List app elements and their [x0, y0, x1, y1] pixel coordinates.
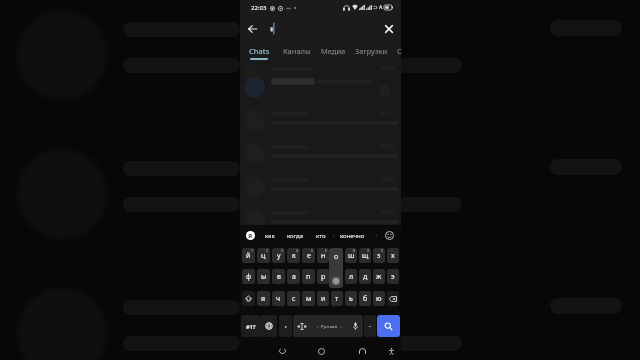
button[interactable]: когда	[282, 225, 308, 246]
staticText: у	[277, 251, 281, 261]
button[interactable]: Search	[377, 315, 400, 337]
button[interactable]: Загрузки	[354, 42, 388, 62]
button[interactable]: д	[359, 269, 371, 284]
button[interactable]: п	[302, 269, 315, 284]
staticText: л	[349, 272, 354, 282]
staticText: о	[334, 252, 339, 262]
button[interactable]: ц	[257, 248, 270, 263]
staticText: 6	[325, 248, 328, 253]
button[interactable]: а	[287, 269, 300, 284]
button[interactable]: Backspace	[387, 291, 399, 306]
staticText: 1	[251, 248, 254, 253]
button[interactable]: м	[302, 291, 315, 306]
button[interactable]: ю	[373, 291, 385, 306]
button[interactable]: .	[364, 315, 376, 337]
button[interactable]: у	[272, 248, 285, 263]
staticText: ш	[348, 251, 355, 261]
button[interactable]: Медиа	[319, 42, 347, 62]
button[interactable]: Chats	[245, 42, 273, 62]
button[interactable]: Home	[314, 344, 328, 358]
button[interactable]: Voice input	[353, 322, 358, 330]
button[interactable]: ,	[279, 315, 292, 337]
staticText: ц	[261, 251, 266, 261]
staticText: п	[306, 272, 311, 282]
button[interactable]: Yandex keyboard	[246, 231, 255, 240]
staticText: ч	[276, 294, 281, 304]
staticText: как	[265, 232, 275, 240]
button[interactable]: кто	[308, 225, 334, 246]
staticText: #1?	[246, 323, 256, 330]
staticText: в	[277, 272, 281, 282]
staticText: г	[335, 251, 339, 261]
button[interactable]: э	[387, 269, 399, 284]
button[interactable]: ь	[345, 291, 357, 306]
button[interactable]: к	[287, 248, 300, 263]
staticText: щ	[362, 251, 369, 261]
button[interactable]: ‹	[293, 315, 363, 337]
staticText: ж	[376, 272, 382, 282]
button[interactable]: т	[331, 291, 343, 306]
button[interactable]: как	[257, 225, 283, 246]
button[interactable]: р	[317, 269, 329, 284]
button[interactable]: н	[317, 248, 329, 263]
button[interactable]: С	[394, 42, 404, 62]
staticText: 22:03	[251, 4, 267, 12]
staticText: 4	[296, 248, 299, 253]
button[interactable]: ы	[257, 269, 270, 284]
staticText: .	[369, 320, 371, 330]
staticText: Загрузки	[355, 46, 388, 56]
staticText: э	[391, 272, 395, 282]
button[interactable]: Clear search	[379, 19, 398, 38]
staticText: е	[307, 251, 311, 261]
button[interactable]: ф	[242, 269, 255, 284]
staticText: и	[321, 294, 326, 304]
button[interactable]: с	[287, 291, 300, 306]
staticText: ю	[376, 294, 382, 304]
button[interactable]: е	[302, 248, 315, 263]
staticText: ‹	[317, 323, 319, 330]
staticText: Медиа	[321, 46, 346, 56]
button[interactable]: я	[257, 291, 270, 306]
button[interactable]: г	[331, 248, 343, 263]
button[interactable]: Shift	[242, 291, 255, 306]
button[interactable]: о	[331, 269, 343, 284]
button[interactable]: б	[359, 291, 371, 306]
button[interactable]: ш	[345, 248, 357, 263]
staticText: н	[321, 251, 326, 261]
button[interactable]: Back	[275, 344, 289, 358]
button[interactable]: ж	[373, 269, 385, 284]
button[interactable]: #1?	[241, 315, 260, 337]
staticText: ф	[246, 272, 252, 282]
button[interactable]	[240, 204, 401, 236]
button[interactable]: л	[345, 269, 357, 284]
button[interactable]: в	[272, 269, 285, 284]
staticText: С	[397, 46, 402, 56]
staticText: з	[377, 251, 381, 261]
staticText: й	[246, 251, 251, 261]
staticText: Chats	[249, 46, 270, 56]
staticText: конечно	[340, 232, 365, 240]
staticText: т	[335, 294, 339, 304]
button[interactable]: й	[242, 248, 255, 263]
button[interactable]	[240, 72, 401, 104]
button[interactable]: Back	[243, 19, 262, 38]
button[interactable]: Accessibility	[384, 344, 398, 358]
button[interactable]: Switch language	[260, 315, 277, 337]
staticText: 3	[281, 248, 284, 253]
staticText: 5	[311, 248, 314, 253]
button[interactable]: ч	[272, 291, 285, 306]
button[interactable]: х	[387, 248, 399, 263]
staticText: 9	[367, 248, 370, 253]
button[interactable]: Emoji	[385, 231, 394, 240]
button[interactable]: и	[317, 291, 329, 306]
button[interactable]: Каналы	[282, 42, 312, 62]
button[interactable]: конечно	[339, 225, 365, 246]
button[interactable]: Recents	[355, 344, 369, 358]
button[interactable]: щ	[359, 248, 371, 263]
staticText: д	[363, 272, 368, 282]
button[interactable]: з	[373, 248, 385, 263]
